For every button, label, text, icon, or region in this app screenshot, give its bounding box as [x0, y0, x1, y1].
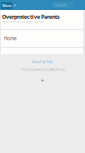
staticText: The best overprotective parents blog eve… — [2, 20, 44, 23]
button[interactable]: Menu — [1, 2, 16, 9]
button[interactable]: Home — [1, 30, 83, 47]
staticText: View Full Site — [32, 60, 53, 64]
staticText: Overprotective Parents — [2, 13, 60, 20]
staticText: Menu — [2, 3, 11, 8]
staticText: Home — [4, 35, 17, 42]
staticText: Search — [55, 2, 66, 8]
button[interactable]: Search — [52, 2, 73, 8]
button[interactable]: View Full Site — [0, 60, 85, 64]
staticText: Proudly powered by WordPress — [20, 68, 64, 72]
